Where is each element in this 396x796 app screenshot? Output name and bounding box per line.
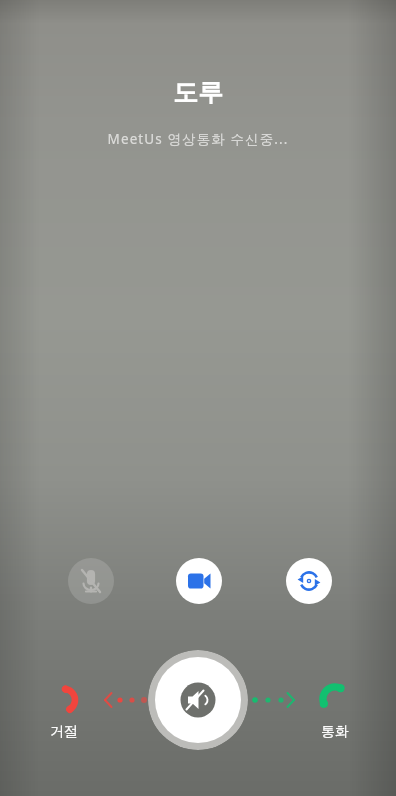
button[interactable]: Slide to answer, speaker muted — [148, 650, 248, 750]
button[interactable]: Toggle video — [176, 558, 222, 604]
button[interactable]: Decline call — [25, 678, 103, 752]
button[interactable]: Mute microphone — [68, 558, 114, 604]
staticText: 거절 — [25, 723, 103, 741]
staticText: 통화 — [296, 723, 374, 741]
staticText: 도루 — [0, 77, 396, 108]
staticText: MeetUs 영상통화 수신중... — [0, 130, 396, 148]
button[interactable]: Switch camera — [286, 558, 332, 604]
button[interactable]: Answer call — [296, 678, 374, 752]
